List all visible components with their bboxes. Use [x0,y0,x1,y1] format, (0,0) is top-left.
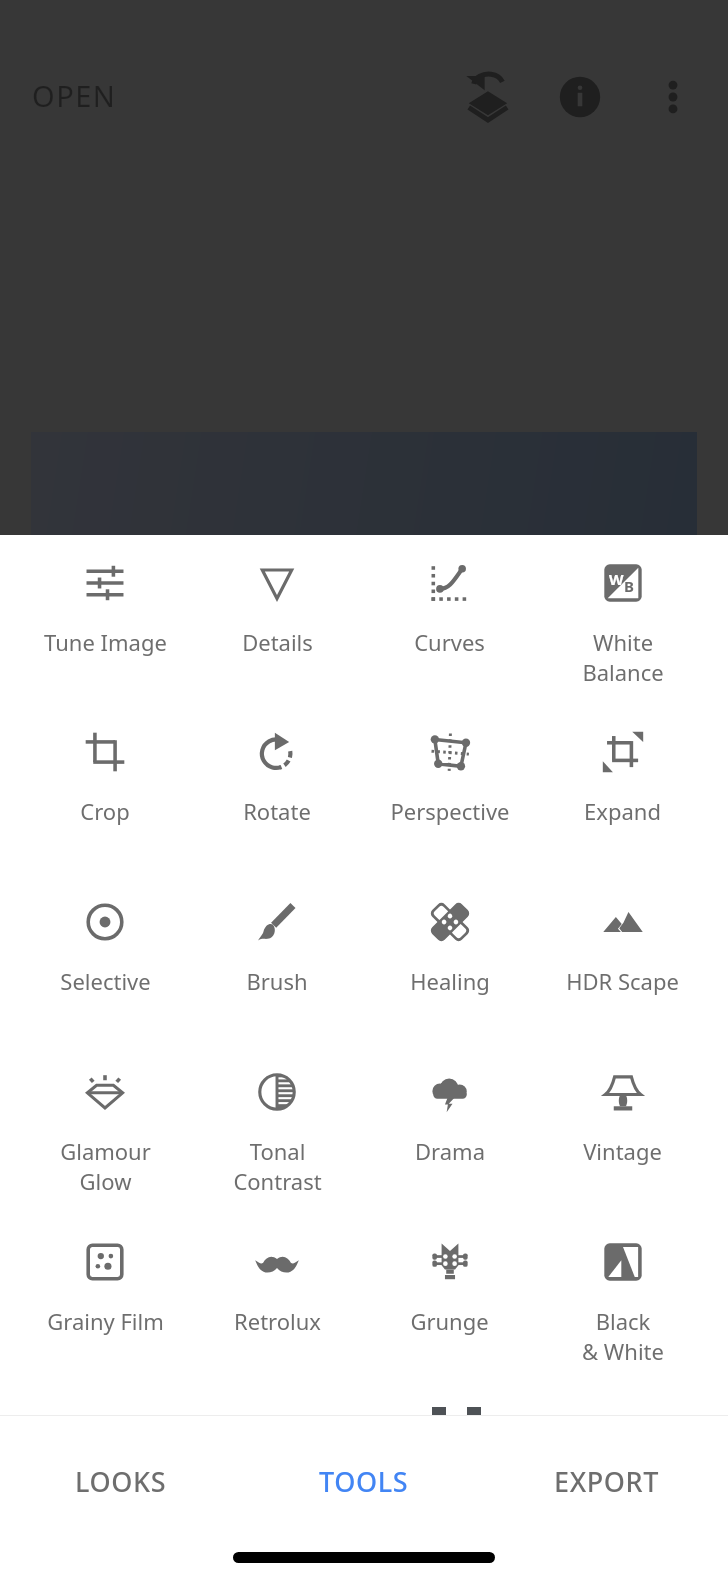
button[interactable]: Undo and view edits [451,61,523,133]
button[interactable]: Rotate [191,704,363,874]
staticText: Expand [584,796,661,826]
staticText: White Balance [582,627,664,687]
staticText: HDR Scape [566,966,679,996]
staticText: TOOLS [319,1463,409,1500]
button[interactable]: Black & White [536,1214,709,1384]
staticText: Rotate [243,796,311,826]
button[interactable]: Crop [19,704,191,874]
button[interactable]: Details [191,535,363,704]
staticText: W [609,569,624,589]
button[interactable]: Vintage [536,1044,709,1214]
button[interactable]: Grainy Film [19,1214,191,1384]
staticText: LOOKS [75,1463,167,1500]
button[interactable]: Tonal Contrast [191,1044,363,1214]
staticText: Details [242,627,313,657]
staticText: EXPORT [554,1463,660,1500]
staticText: Healing [410,966,490,996]
staticText: Perspective [390,796,510,826]
button[interactable]: HDR Scape [536,874,709,1044]
staticText: Tune Image [44,627,167,657]
staticText: Grainy Film [47,1306,164,1336]
staticText: Vintage [583,1136,662,1166]
staticText: Brush [246,966,308,996]
button[interactable]: More options [637,61,709,133]
staticText: Retrolux [234,1306,321,1336]
staticText: B [624,576,634,596]
button[interactable]: LOOKS [0,1416,242,1546]
button[interactable]: Tune Image [19,535,191,704]
staticText: Tonal Contrast [233,1136,322,1196]
button[interactable] [364,1384,546,1415]
button[interactable]: Grunge [363,1214,536,1384]
button[interactable]: Healing [363,874,536,1044]
staticText: OPEN [32,76,117,115]
staticText: Black & White [582,1306,664,1366]
button[interactable]: Selective [19,874,191,1044]
button[interactable]: Glamour Glow [19,1044,191,1214]
button[interactable]: Retrolux [191,1214,363,1384]
button[interactable]: Brush [191,874,363,1044]
button[interactable]: Perspective [363,704,536,874]
button[interactable]: EXPORT [485,1416,728,1546]
button[interactable]: Info [544,61,616,133]
staticText: Curves [414,627,485,657]
button[interactable]: OPEN [22,66,127,125]
staticText: Glamour Glow [60,1136,151,1196]
button[interactable]: TOOLS [242,1416,485,1546]
staticText: Drama [415,1136,485,1166]
button[interactable]: Drama [363,1044,536,1214]
button[interactable]: Expand [536,704,709,874]
staticText: Crop [80,796,130,826]
staticText: Selective [60,966,151,996]
button[interactable]: Curves [363,535,536,704]
button[interactable]: W [536,535,709,704]
staticText: Grunge [410,1306,489,1336]
